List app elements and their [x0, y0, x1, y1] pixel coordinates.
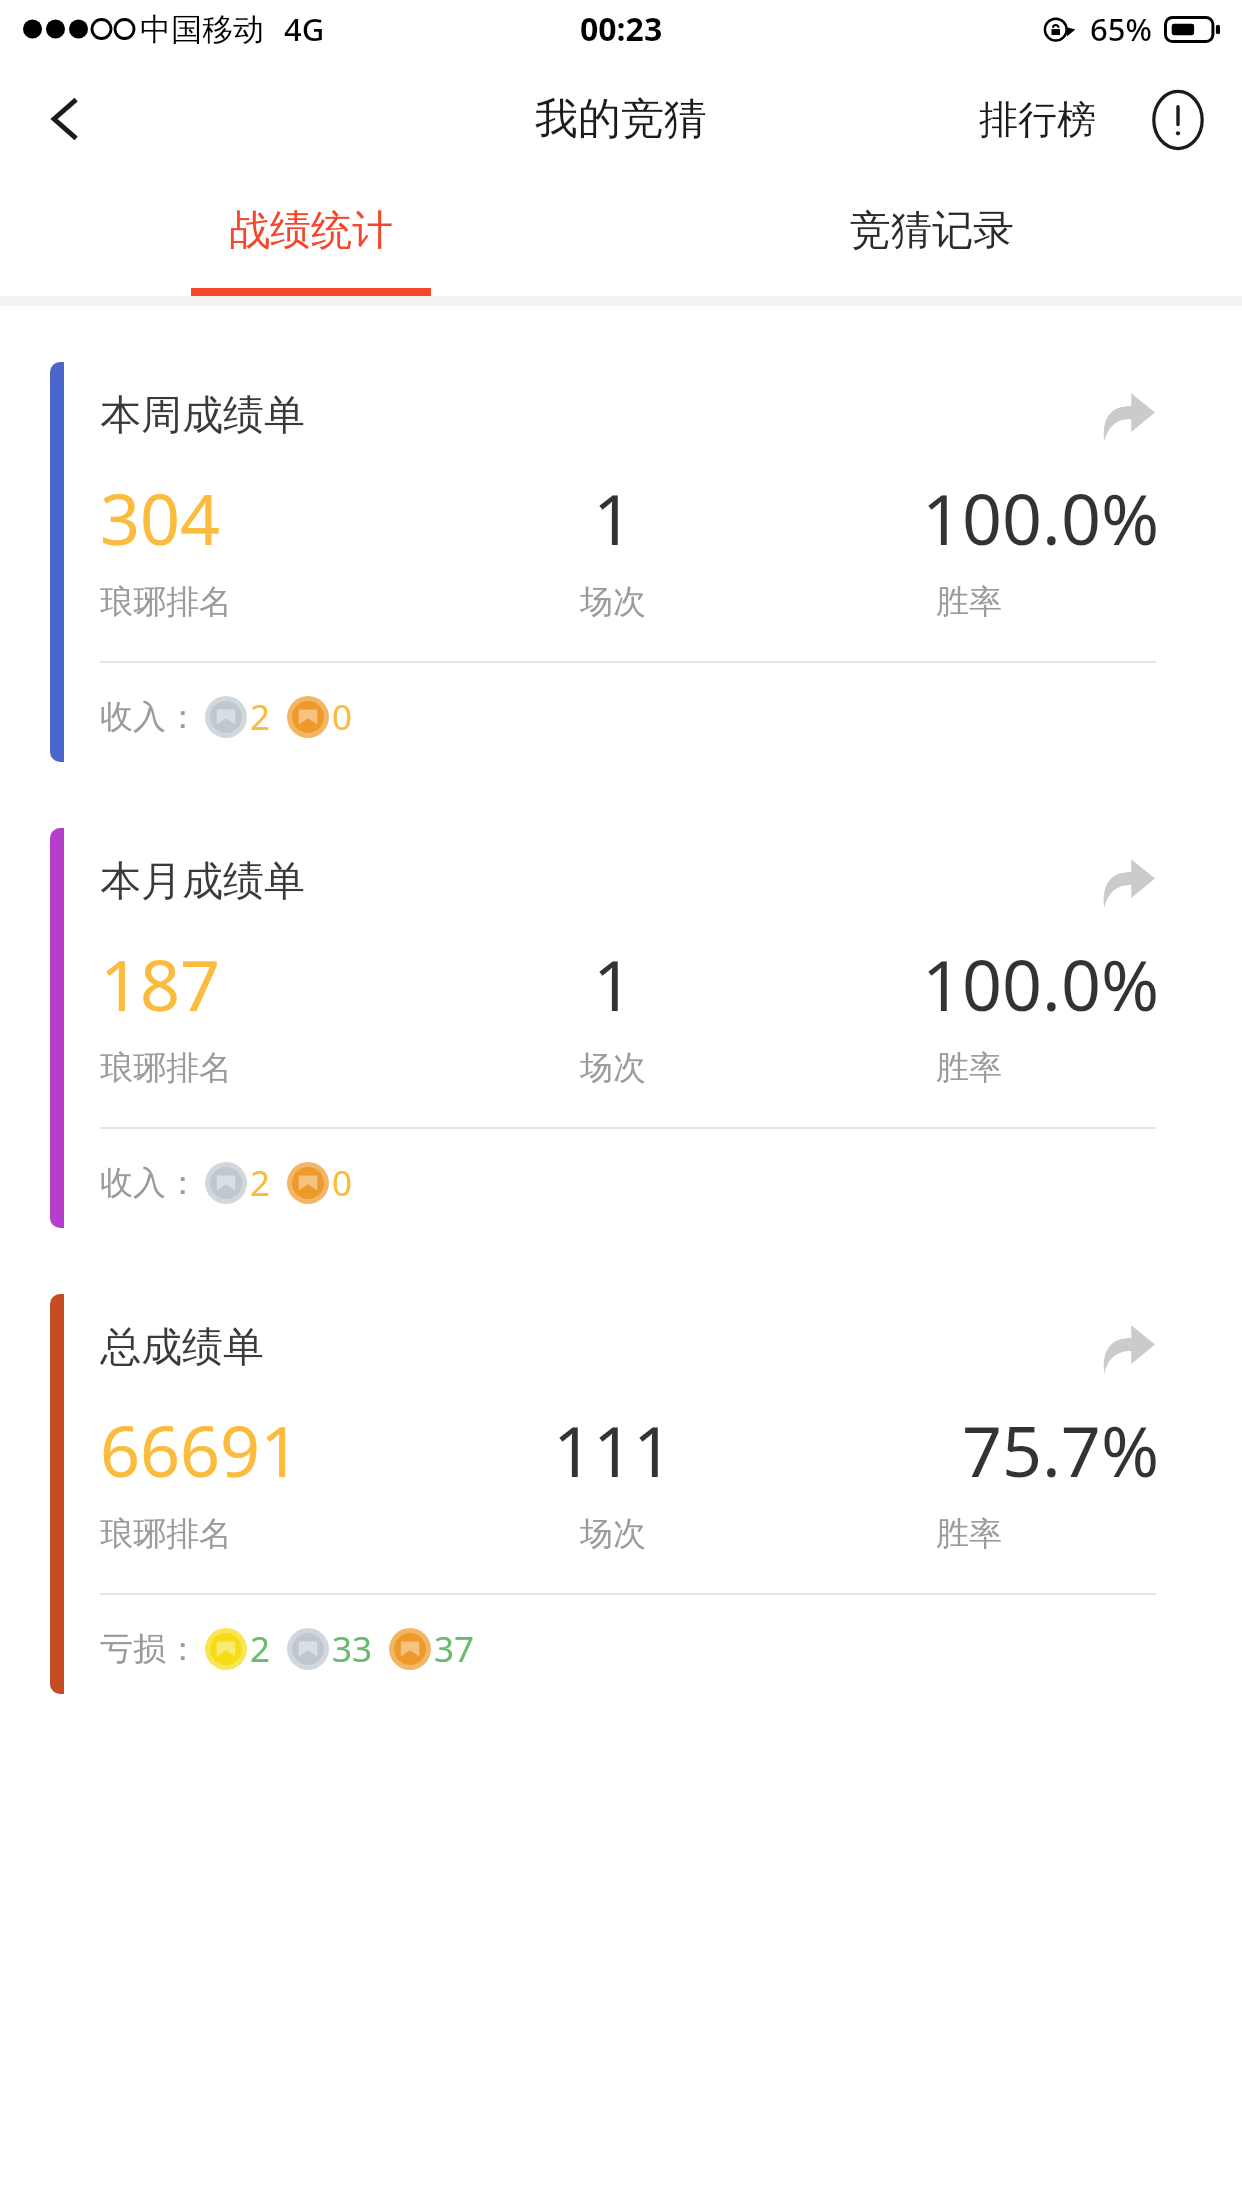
staticText: 00:23 — [580, 7, 663, 51]
staticText: 66691 — [100, 1402, 301, 1497]
staticText: 0 — [332, 693, 353, 741]
button[interactable]: Share — [1096, 386, 1160, 450]
staticText: 100.0% — [922, 470, 1160, 565]
staticText: 琅琊排名 — [100, 1047, 232, 1089]
button[interactable]: Back — [18, 71, 114, 167]
staticText: 37 — [434, 1625, 475, 1673]
button[interactable]: 本月成绩单 — [50, 828, 1192, 1228]
staticText: 总成绩单 — [100, 1322, 264, 1374]
staticText: 战绩统计 — [229, 205, 393, 257]
staticText: 亏损： — [100, 1628, 199, 1670]
staticText: 琅琊排名 — [100, 581, 232, 623]
staticText: 304 — [100, 470, 221, 565]
button[interactable]: 战绩统计 — [0, 180, 621, 296]
button[interactable]: Rules information — [1138, 80, 1218, 160]
staticText: 场次 — [580, 581, 646, 623]
staticText: 2 — [250, 1159, 271, 1207]
staticText: 0 — [332, 1159, 353, 1207]
button[interactable]: Share — [1096, 1318, 1160, 1382]
staticText: 1 — [593, 936, 634, 1031]
staticText: 2 — [250, 1625, 271, 1673]
staticText: 65% — [1090, 8, 1152, 50]
staticText: 我的竞猜 — [535, 92, 707, 146]
staticText: 本周成绩单 — [100, 390, 305, 442]
button[interactable]: 竞猜记录 — [621, 180, 1242, 296]
staticText: 75.7% — [962, 1402, 1160, 1497]
staticText: 胜率 — [936, 1047, 1002, 1089]
staticText: 场次 — [580, 1513, 646, 1555]
staticText: 4G — [284, 8, 325, 50]
staticText: 竞猜记录 — [850, 205, 1014, 257]
staticText: 187 — [100, 936, 221, 1031]
staticText: 胜率 — [936, 1513, 1002, 1555]
staticText: 收入： — [100, 696, 199, 738]
staticText: 100.0% — [922, 936, 1160, 1031]
staticText: 1 — [593, 470, 634, 565]
staticText: 中国移动 — [140, 10, 264, 49]
staticText: 111 — [553, 1402, 674, 1497]
staticText: 2 — [250, 693, 271, 741]
staticText: 琅琊排名 — [100, 1513, 232, 1555]
staticText: 本月成绩单 — [100, 856, 305, 908]
staticText: 场次 — [580, 1047, 646, 1089]
button[interactable]: 排行榜 — [967, 79, 1108, 160]
staticText: 排行榜 — [979, 95, 1096, 144]
staticText: 收入： — [100, 1162, 199, 1204]
staticText: 33 — [332, 1625, 373, 1673]
staticText: 胜率 — [936, 581, 1002, 623]
button[interactable]: 总成绩单 — [50, 1294, 1192, 1694]
button[interactable]: 本周成绩单 — [50, 362, 1192, 762]
button[interactable]: Share — [1096, 852, 1160, 916]
